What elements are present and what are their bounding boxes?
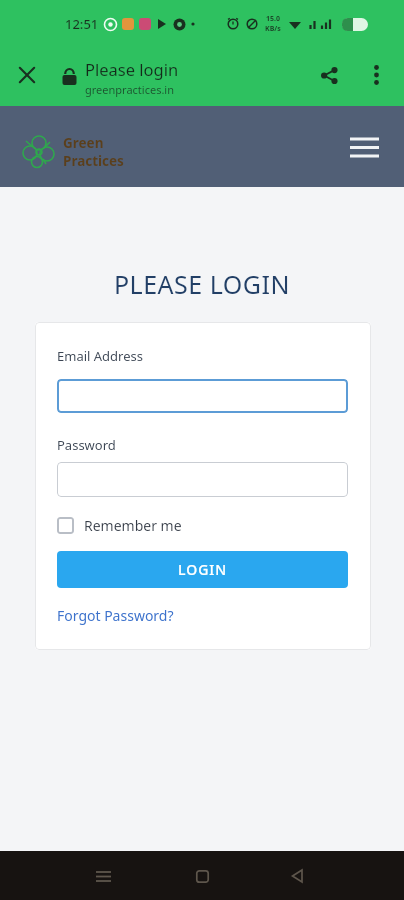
button[interactable]: [83, 856, 123, 896]
staticText: PLEASE LOGIN: [0, 267, 404, 301]
button[interactable]: [7, 55, 47, 95]
button[interactable]: [277, 856, 317, 896]
button[interactable]: [57, 379, 348, 413]
button[interactable]: Forgot Password?: [57, 606, 174, 625]
staticText: Email Address: [57, 347, 143, 365]
button[interactable]: [57, 462, 348, 497]
staticText: 15.0: [266, 14, 280, 24]
staticText: Green: [63, 134, 104, 152]
button[interactable]: [356, 55, 396, 95]
staticText: 12:51: [65, 15, 99, 33]
button[interactable]: Remember me: [57, 516, 182, 535]
staticText: KB/s: [265, 24, 281, 34]
staticText: Remember me: [84, 516, 182, 535]
staticText: greenpractices.in: [85, 82, 174, 97]
button[interactable]: [309, 55, 349, 95]
staticText: Password: [57, 436, 116, 454]
button[interactable]: LOGIN: [57, 551, 348, 588]
staticText: Practices: [63, 152, 124, 170]
staticText: LOGIN: [178, 560, 228, 579]
button[interactable]: [342, 125, 386, 169]
button[interactable]: [182, 856, 222, 896]
staticText: Please login: [85, 58, 179, 80]
